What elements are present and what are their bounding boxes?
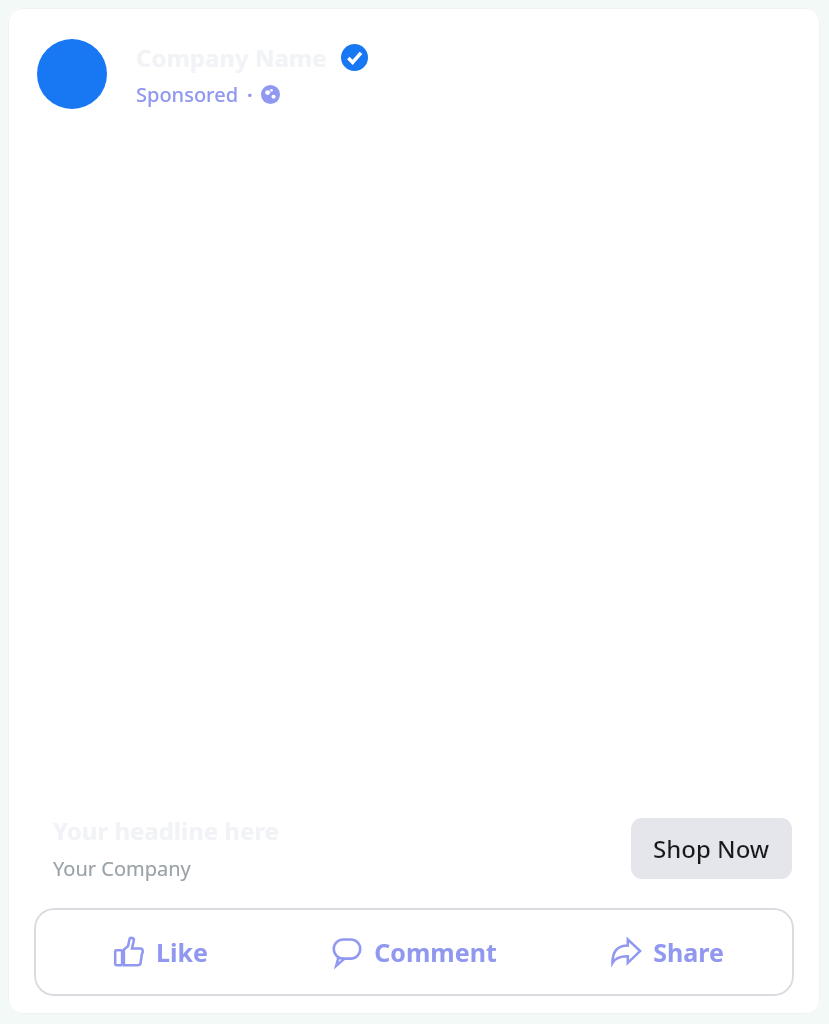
button[interactable]: Comment	[288, 908, 541, 996]
other: Share	[611, 937, 641, 967]
other: Verified	[341, 44, 368, 71]
staticText: Your Company	[53, 855, 191, 882]
staticText: Sponsored	[136, 81, 239, 108]
button[interactable]: Shop Now	[631, 818, 792, 879]
staticText: Comment	[374, 935, 497, 969]
staticText: Like	[156, 935, 208, 969]
staticText: Your headline here	[53, 814, 279, 847]
staticText: Share	[653, 935, 724, 969]
button[interactable]: Share	[541, 908, 794, 996]
button[interactable]: Like	[34, 908, 288, 996]
other: Profile picture	[37, 39, 107, 109]
staticText: Shop Now	[653, 832, 770, 865]
other: Public	[261, 85, 280, 104]
staticText: Company Name	[136, 41, 327, 74]
other: Like	[114, 937, 144, 967]
other: Comment	[332, 937, 362, 967]
staticText: ·	[247, 81, 253, 108]
button[interactable]: Profile picture	[8, 8, 820, 140]
